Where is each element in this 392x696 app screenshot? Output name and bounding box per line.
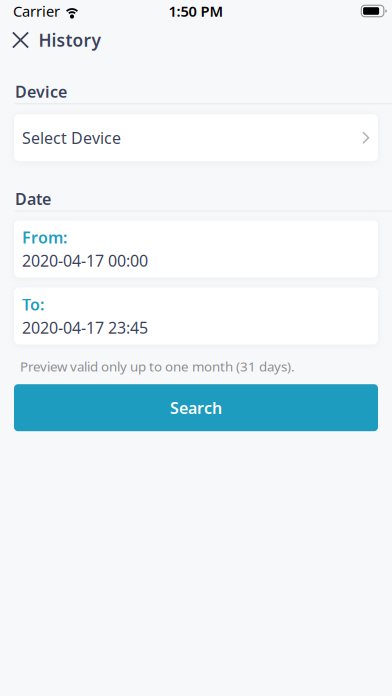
staticText: 2020-04-17 23:45 — [22, 317, 148, 338]
button[interactable]: From: — [14, 220, 378, 277]
staticText: To: — [22, 294, 44, 315]
staticText: History — [38, 28, 100, 51]
button[interactable]: Select Device — [14, 114, 378, 161]
staticText: From: — [22, 227, 67, 248]
staticText: Preview valid only up to one month (31 d… — [20, 357, 295, 375]
staticText: Carrier — [13, 1, 60, 21]
button[interactable]: To: — [14, 287, 378, 344]
staticText: 1:50 PM — [168, 1, 223, 21]
button[interactable]: Search — [14, 384, 378, 431]
staticText: 2020-04-17 00:00 — [22, 250, 148, 271]
staticText: Date — [15, 188, 51, 209]
button[interactable]: Close — [5, 25, 35, 55]
staticText: Select Device — [22, 127, 121, 148]
staticText: Search — [170, 397, 222, 418]
staticText: Device — [15, 81, 67, 102]
